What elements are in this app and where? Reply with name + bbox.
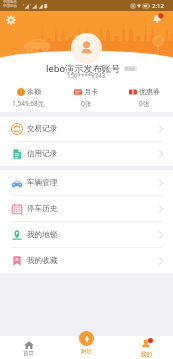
button[interactable]: 停车历史 <box>0 196 173 221</box>
button[interactable]: 我的地锁 <box>0 222 173 247</box>
staticText: 0张 <box>139 99 150 108</box>
button[interactable]: 交易记录 <box>0 117 173 141</box>
staticText: 中国移动 <box>3 4 17 8</box>
button[interactable]: 我的 <box>115 336 173 359</box>
staticText: 156****9743 <box>67 71 106 79</box>
button[interactable]: 优惠券 <box>115 87 173 108</box>
button[interactable]: 月卡 <box>57 87 115 108</box>
staticText: 交易记录 <box>27 124 58 134</box>
button[interactable]: 余额 <box>0 87 57 108</box>
staticText: 附近 <box>81 348 92 355</box>
staticText: 优惠券 <box>139 87 160 96</box>
staticText: lebo演示发布账号 <box>46 62 121 75</box>
button[interactable]: 我的收藏 <box>0 248 173 273</box>
staticText: 2:12 <box>152 2 164 10</box>
staticText: 我的收藏 <box>27 256 58 266</box>
staticText: 我的 <box>141 351 152 358</box>
staticText: 已认证 <box>125 67 136 71</box>
button[interactable]: 附近 <box>57 336 115 359</box>
staticText: 余额 <box>27 87 41 96</box>
staticText: 信用记录 <box>27 149 58 159</box>
button[interactable]: Notifications <box>152 14 163 25</box>
staticText: 车辆管理 <box>27 178 58 188</box>
button[interactable]: 信用记录 <box>0 142 173 166</box>
staticText: 停车历史 <box>27 204 58 214</box>
staticText: 0张 <box>81 99 92 108</box>
staticText: 1,549.68元 <box>12 99 45 108</box>
button[interactable]: 首页 <box>0 336 57 359</box>
button[interactable]: Settings <box>6 15 16 25</box>
staticText: 月卡 <box>84 87 98 96</box>
button[interactable]: 车辆管理 <box>0 170 173 195</box>
staticText: 首页 <box>23 350 34 357</box>
button[interactable]: Profile photo <box>71 33 102 64</box>
staticText: 中国电信 <box>3 0 17 4</box>
staticText: 我的地锁 <box>27 230 58 240</box>
